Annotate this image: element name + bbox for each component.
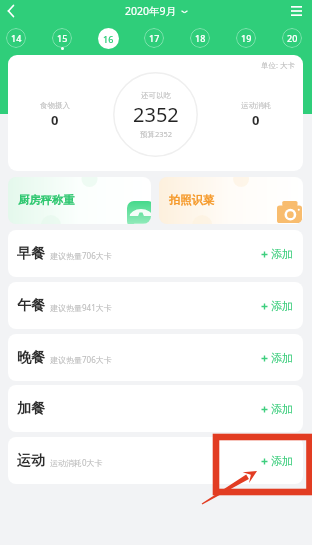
button[interactable]: 添加 bbox=[261, 351, 293, 365]
staticText: 2352 bbox=[133, 101, 179, 128]
staticText: 18 bbox=[195, 32, 206, 44]
staticText: 建议热量706大卡 bbox=[50, 250, 112, 261]
button[interactable]: 添加 bbox=[261, 402, 293, 416]
staticText: 0 bbox=[51, 111, 59, 129]
staticText: 添加 bbox=[271, 402, 293, 416]
button[interactable]: Menu bbox=[287, 2, 305, 20]
button[interactable]: 17 bbox=[140, 24, 168, 52]
button[interactable]: 运动 bbox=[8, 437, 303, 484]
button[interactable]: 晚餐 bbox=[8, 334, 303, 381]
staticText: 早餐 bbox=[17, 245, 45, 263]
button[interactable]: 厨房秤称重 bbox=[8, 177, 151, 224]
staticText: 添加 bbox=[271, 247, 293, 261]
staticText: 单位: 大卡 bbox=[261, 60, 295, 70]
button[interactable]: 早餐 bbox=[8, 230, 303, 277]
staticText: 添加 bbox=[271, 299, 293, 313]
staticText: 0 bbox=[252, 111, 260, 129]
button[interactable]: 16 bbox=[94, 24, 122, 52]
button[interactable]: 拍照识菜 bbox=[159, 177, 303, 224]
staticText: 19 bbox=[241, 32, 252, 44]
button[interactable]: 2020年9月 bbox=[125, 4, 188, 18]
staticText: 建议热量941大卡 bbox=[50, 302, 112, 313]
staticText: 运动 bbox=[17, 452, 45, 470]
staticText: 16 bbox=[103, 33, 114, 45]
staticText: 2020年9月 bbox=[125, 4, 177, 18]
staticText: 20 bbox=[287, 32, 298, 44]
staticText: 添加 bbox=[271, 454, 293, 468]
button[interactable]: 18 bbox=[186, 24, 214, 52]
staticText: 14 bbox=[11, 32, 22, 44]
button[interactable]: 15 bbox=[48, 24, 76, 52]
staticText: 运动消耗0大卡 bbox=[50, 457, 103, 468]
staticText: 厨房秤称重 bbox=[18, 193, 75, 207]
staticText: 建议热量706大卡 bbox=[50, 354, 112, 365]
staticText: 午餐 bbox=[17, 297, 45, 315]
button[interactable]: 添加 bbox=[261, 299, 293, 313]
button[interactable]: 加餐 bbox=[8, 385, 303, 432]
button[interactable]: 午餐 bbox=[8, 282, 303, 329]
button[interactable]: 20 bbox=[278, 24, 306, 52]
staticText: 运动消耗 bbox=[241, 101, 271, 110]
button[interactable]: 19 bbox=[232, 24, 260, 52]
staticText: 添加 bbox=[271, 351, 293, 365]
staticText: 还可以吃 bbox=[141, 91, 171, 100]
button[interactable]: 添加 bbox=[261, 454, 293, 468]
staticText: 拍照识菜 bbox=[169, 193, 215, 207]
staticText: 食物摄入 bbox=[40, 101, 70, 110]
staticText: 17 bbox=[149, 32, 160, 44]
staticText: 加餐 bbox=[17, 400, 45, 418]
staticText: 15 bbox=[57, 32, 68, 44]
button[interactable]: 14 bbox=[2, 24, 30, 52]
staticText: 晚餐 bbox=[17, 349, 45, 367]
button[interactable]: 添加 bbox=[261, 247, 293, 261]
button[interactable]: Back bbox=[3, 2, 21, 20]
staticText: 预算2352 bbox=[140, 129, 173, 139]
